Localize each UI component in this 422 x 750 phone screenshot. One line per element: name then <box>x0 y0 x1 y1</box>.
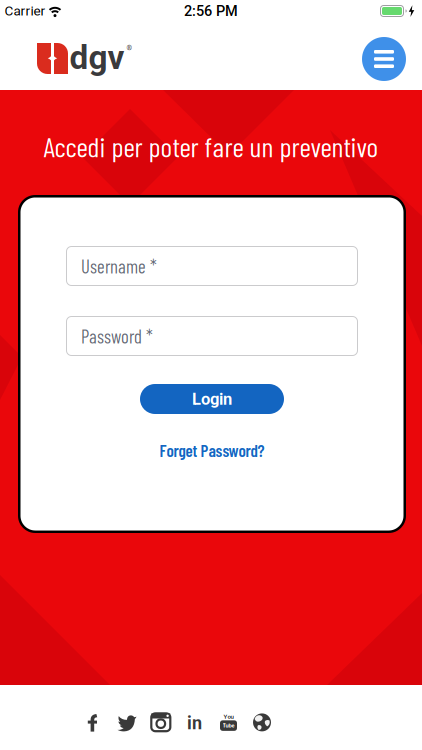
button[interactable]: Facebook <box>82 711 104 733</box>
staticText: Forget Password? <box>159 440 264 460</box>
button[interactable]: YouTube <box>217 711 239 733</box>
button[interactable]: Twitter <box>116 711 138 733</box>
staticText: You <box>223 713 233 720</box>
staticText: Carrier <box>4 3 45 19</box>
button[interactable]: Password * <box>66 316 358 356</box>
button[interactable]: Login <box>140 384 284 414</box>
staticText: ® <box>126 44 132 52</box>
button[interactable]: Menu <box>362 37 406 81</box>
button[interactable]: Forget Password? <box>159 440 264 460</box>
staticText: 2:56 PM <box>184 2 238 19</box>
staticText: Accedi per poter fare un preventivo <box>43 129 378 163</box>
button[interactable]: LinkedIn <box>183 711 205 733</box>
button[interactable]: Website <box>251 711 273 733</box>
staticText: in <box>187 712 202 734</box>
staticText: Username * <box>81 255 157 277</box>
staticText: dgv <box>69 38 124 77</box>
staticText: Tube <box>222 722 234 729</box>
staticText: Password * <box>81 325 153 347</box>
staticText: Login <box>192 389 232 409</box>
button[interactable]: Username * <box>66 246 358 286</box>
button[interactable]: Instagram <box>150 711 172 733</box>
button[interactable]: dgv home <box>36 28 139 75</box>
